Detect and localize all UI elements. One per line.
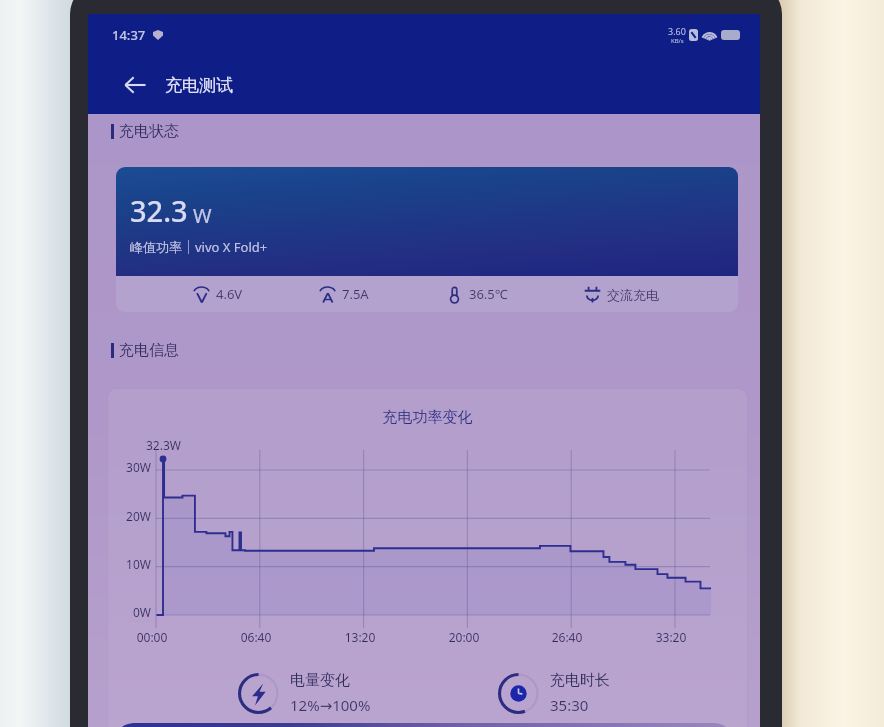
- staticText: 充电时长: [550, 671, 610, 690]
- staticText: KB/s: [671, 37, 684, 45]
- button[interactable]: 4.6V: [193, 285, 243, 303]
- staticText: 06:40: [226, 629, 286, 645]
- staticText: 10W: [109, 556, 151, 572]
- staticText: 峰值功率: [130, 239, 182, 255]
- button[interactable]: 36.5℃: [446, 285, 508, 303]
- staticText: 14:37: [112, 26, 146, 44]
- staticText: 32.3: [130, 191, 188, 230]
- staticText: 00:00: [122, 629, 182, 645]
- staticText: 充电状态: [119, 122, 179, 141]
- staticText: W: [193, 202, 212, 229]
- staticText: 35:30: [550, 695, 589, 715]
- staticText: 30W: [109, 459, 151, 475]
- staticText: 13:20: [330, 629, 390, 645]
- button[interactable]: 充电时长: [498, 671, 610, 715]
- button[interactable]: Back: [113, 63, 157, 107]
- button[interactable]: 交流充电: [584, 286, 659, 303]
- staticText: 充电信息: [119, 341, 179, 360]
- button[interactable]: [114, 723, 734, 727]
- staticText: 20W: [109, 508, 151, 524]
- staticText: 36.5℃: [469, 285, 508, 303]
- staticText: 0W: [109, 604, 151, 620]
- staticText: 4.6V: [216, 285, 243, 303]
- button[interactable]: 7.5A: [319, 285, 369, 303]
- staticText: 充电功率变化: [107, 408, 748, 427]
- staticText: 充电测试: [165, 75, 233, 96]
- button[interactable]: 32.3: [116, 167, 738, 312]
- staticText: 33:20: [641, 629, 701, 645]
- staticText: 26:40: [537, 629, 597, 645]
- staticText: 12%→100%: [290, 695, 371, 715]
- staticText: 3.60: [668, 25, 686, 37]
- staticText: 32.3W: [146, 437, 181, 453]
- staticText: 电量变化: [290, 671, 350, 690]
- staticText: vivo X Fold+: [195, 238, 268, 256]
- staticText: 交流充电: [607, 287, 659, 303]
- staticText: 7.5A: [342, 285, 369, 303]
- button[interactable]: 电量变化: [238, 671, 371, 715]
- staticText: 20:00: [434, 629, 494, 645]
